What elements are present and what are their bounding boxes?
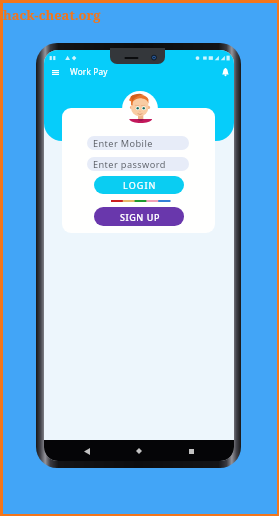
staticText: LOGIN — [123, 179, 157, 191]
staticText: hack-cheat.org — [3, 6, 101, 24]
staticText: Work Pay — [70, 66, 108, 77]
button[interactable]: Recent apps — [181, 441, 201, 461]
staticText: Enter password — [93, 158, 166, 171]
button[interactable]: Open navigation menu — [46, 64, 64, 81]
button[interactable]: LOGIN — [94, 176, 184, 194]
button[interactable]: Enter Mobile — [87, 136, 189, 150]
button[interactable]: Back — [77, 441, 97, 461]
button[interactable]: Notifications — [217, 63, 234, 80]
staticText: Enter Mobile — [93, 137, 153, 150]
button[interactable]: Home — [129, 441, 149, 461]
staticText: SIGN UP — [120, 211, 160, 223]
button[interactable]: SIGN UP — [94, 207, 184, 226]
button[interactable]: Enter password — [87, 157, 189, 171]
